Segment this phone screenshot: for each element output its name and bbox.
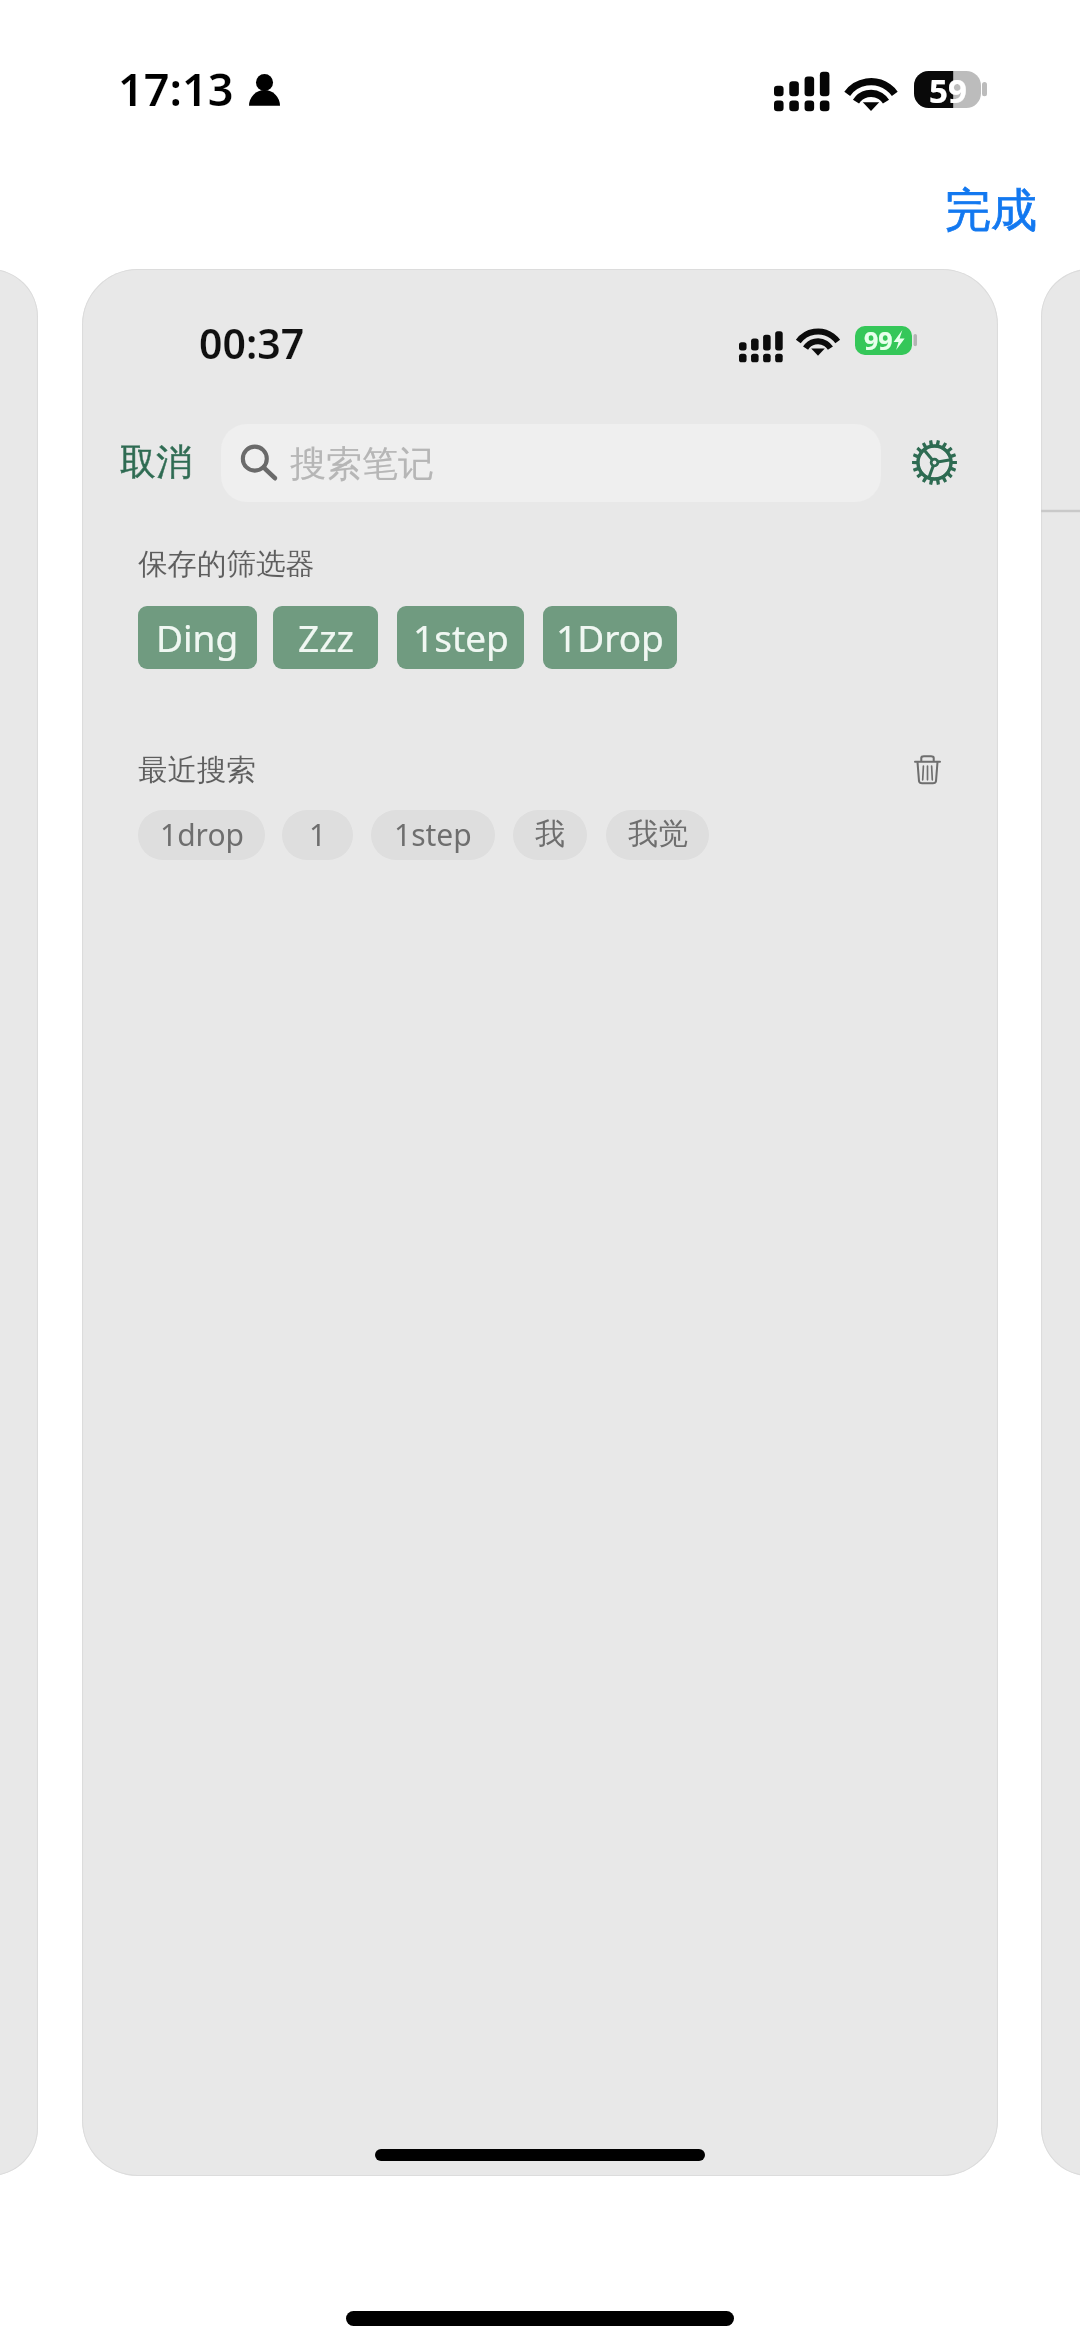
staticText: 保存的筛选器 (138, 546, 315, 583)
button[interactable]: 1 (282, 810, 353, 860)
staticText: 取消 (120, 439, 192, 484)
staticText: Ding (156, 612, 239, 662)
button[interactable]: 我 (513, 810, 587, 860)
staticText: 1Drop (556, 612, 664, 662)
staticText: 搜索笔记 (290, 441, 434, 486)
staticText: 1step (394, 814, 472, 855)
staticText: 我觉 (628, 815, 688, 853)
staticText: 1drop (160, 814, 244, 855)
staticText: 1 (309, 814, 327, 855)
staticText: 我 (535, 815, 565, 853)
button[interactable]: 我觉 (606, 810, 709, 860)
button[interactable]: Settings (892, 420, 976, 504)
staticText: 取消 (120, 439, 192, 484)
staticText: 1step (413, 612, 509, 662)
button[interactable]: Zzz (273, 606, 378, 669)
button[interactable]: 1step (397, 606, 524, 669)
staticText: 00:37 (199, 315, 305, 371)
staticText: Zzz (298, 612, 354, 662)
staticText: 最近搜索 (138, 752, 256, 789)
button[interactable]: Ding (138, 606, 257, 669)
button[interactable]: 1drop (138, 810, 265, 860)
staticText: 17:13 (118, 58, 234, 119)
staticText: 完成 (945, 182, 1037, 240)
button[interactable]: 1step (371, 810, 495, 860)
button[interactable]: 1Drop (543, 606, 677, 669)
staticText: 完成 (945, 182, 1037, 240)
button[interactable]: 搜索笔记 (221, 424, 881, 502)
button[interactable]: 完成 (939, 176, 1043, 246)
button[interactable]: 取消 (110, 429, 202, 494)
staticText: 99 (864, 323, 893, 357)
button[interactable]: Clear recent searches (895, 737, 959, 801)
staticText: 59 (929, 68, 967, 113)
